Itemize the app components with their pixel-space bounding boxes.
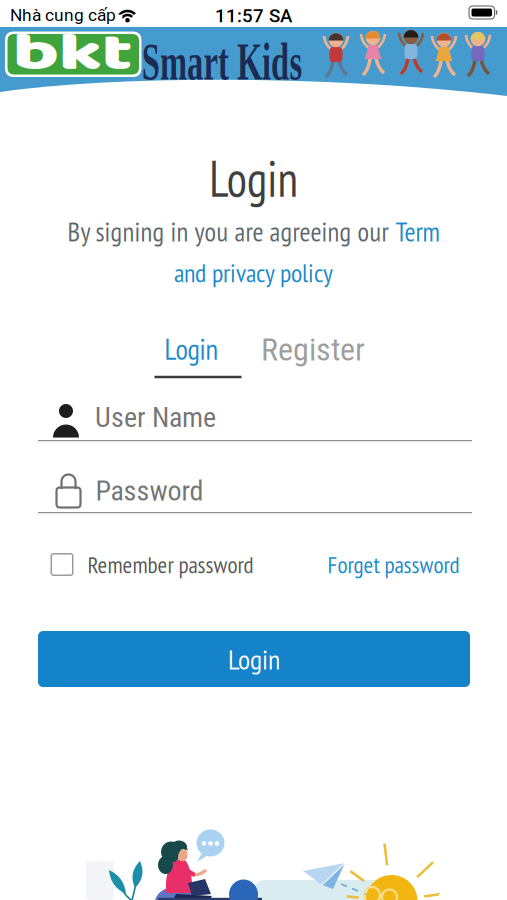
staticText: Register [261, 331, 365, 368]
staticText: bkt [32, 11, 113, 96]
button[interactable]: Term [395, 214, 439, 249]
button[interactable]: Login [164, 330, 218, 368]
staticText: Login [205, 145, 301, 211]
staticText: Remember password [87, 549, 253, 580]
button[interactable]: Login [38, 631, 470, 687]
staticText: Nhà cung cấp [10, 5, 116, 25]
staticText: Smart Kids [90, 32, 353, 91]
staticText: Forget password [327, 549, 459, 580]
staticText: By signing in you are agreeing our [67, 214, 388, 249]
staticText: Term [395, 214, 439, 249]
staticText: and privacy policy [174, 256, 333, 289]
staticText: Login [164, 330, 218, 368]
staticText: 11:57 SA [215, 5, 292, 27]
button[interactable]: Remember password [50, 549, 253, 580]
staticText: Login [228, 641, 280, 677]
staticText: User Name [95, 401, 216, 434]
button[interactable]: and privacy policy [174, 256, 333, 289]
button[interactable]: Register [261, 331, 365, 368]
button[interactable]: Forget password [327, 549, 459, 580]
staticText: Password [95, 475, 203, 507]
